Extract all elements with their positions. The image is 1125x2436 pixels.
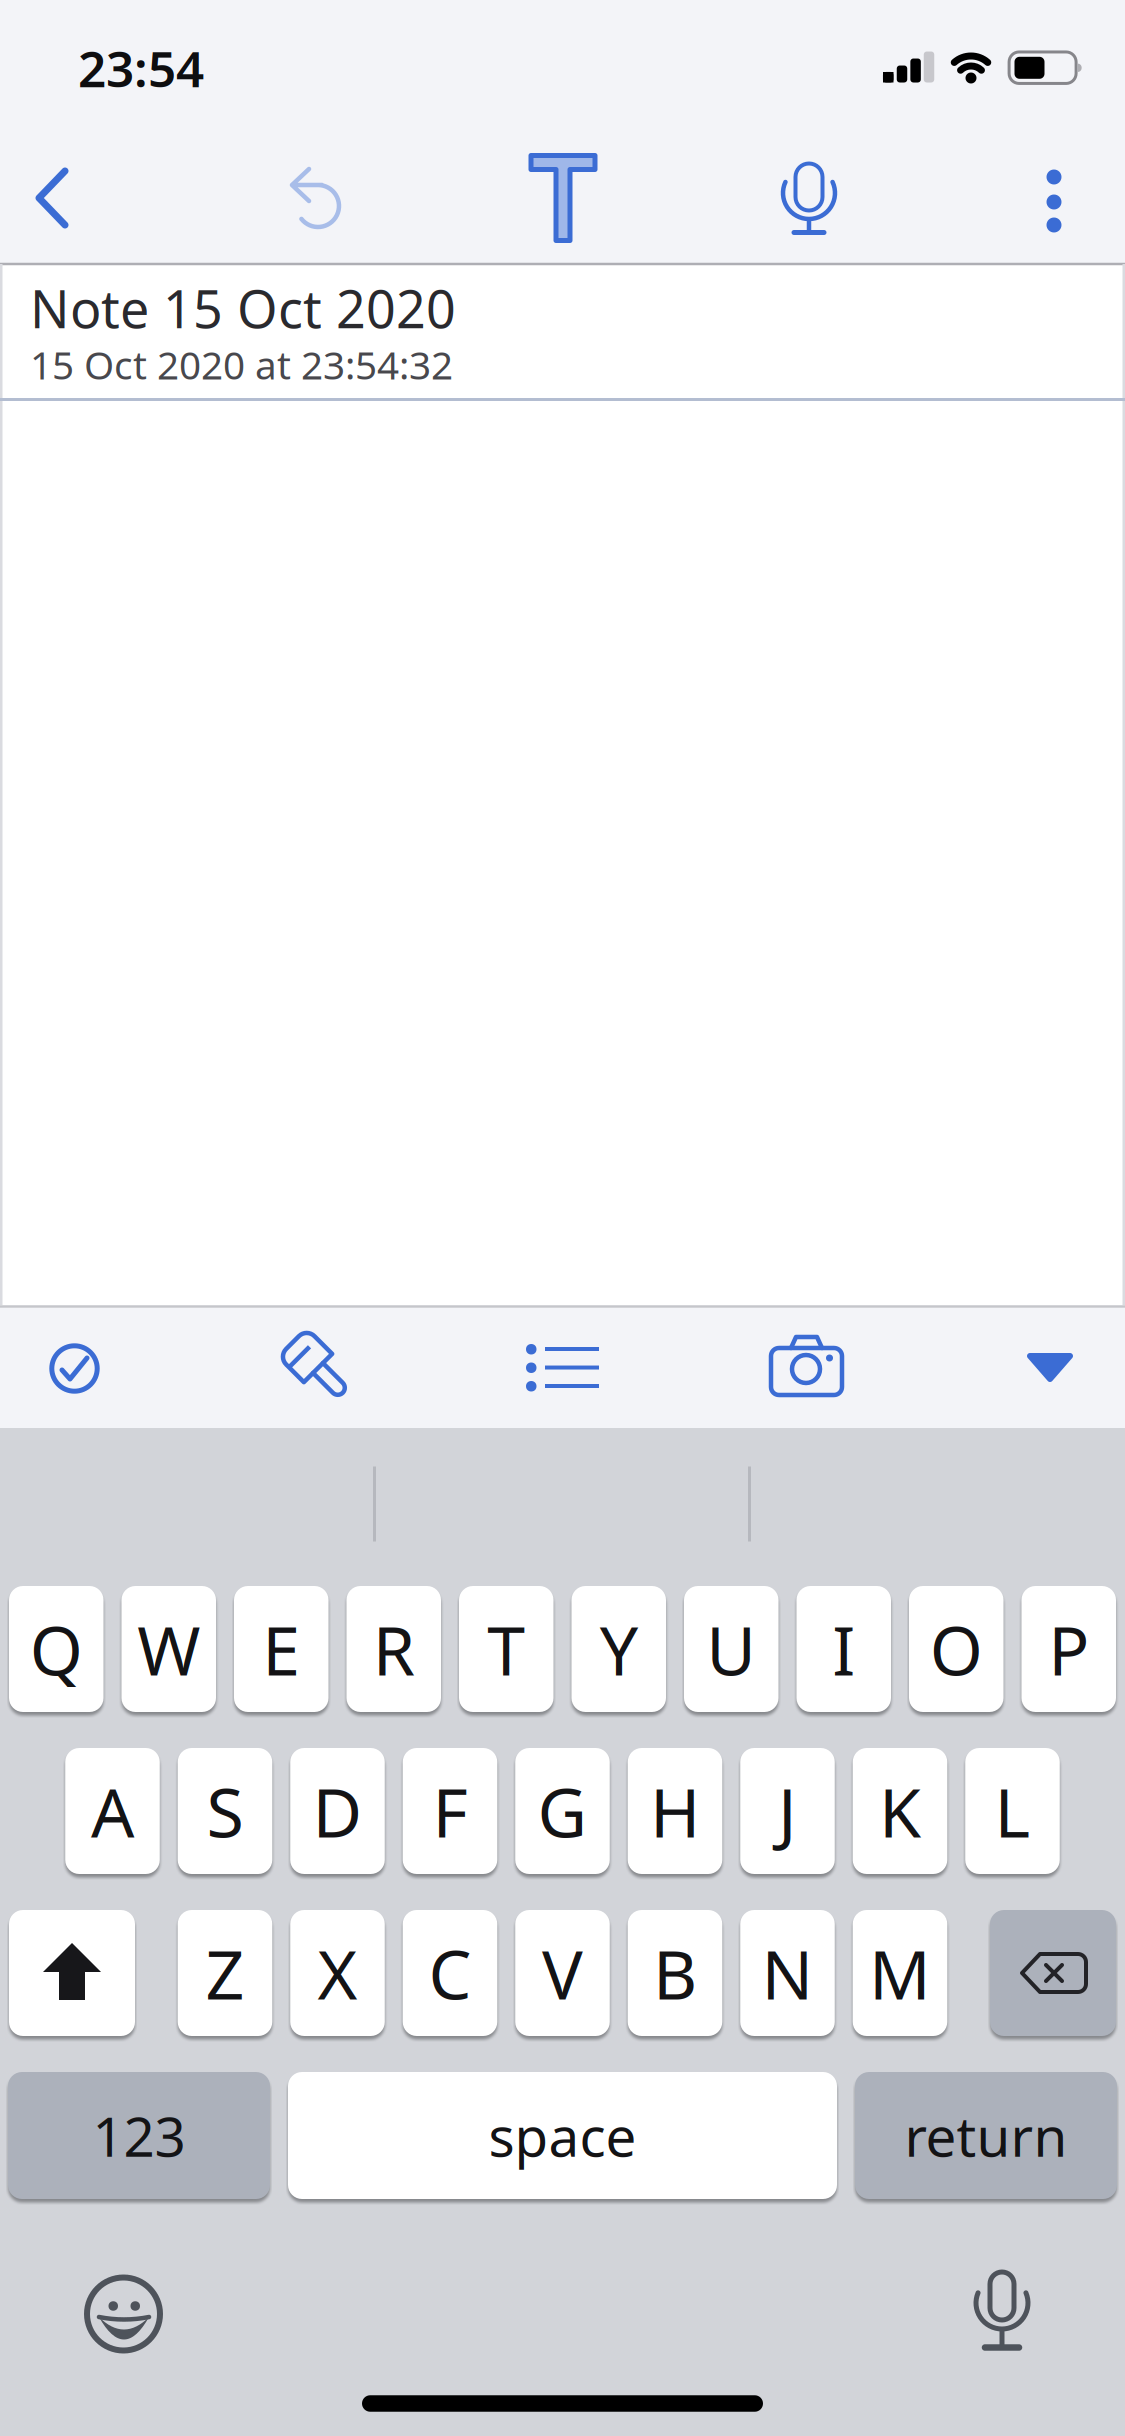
staticText: T [487, 1604, 525, 1694]
button[interactable]: E [234, 1586, 328, 1712]
button[interactable]: Checklist [14, 1308, 134, 1428]
button[interactable]: Q [9, 1586, 103, 1712]
button[interactable]: D [290, 1748, 385, 1874]
staticText: O [930, 1604, 983, 1694]
button[interactable]: Y [571, 1586, 666, 1712]
button[interactable]: 123 [8, 2072, 270, 2199]
button[interactable]: Dismiss keyboard [990, 1308, 1110, 1428]
staticText: return [904, 2099, 1067, 2172]
button[interactable]: J [740, 1748, 835, 1874]
button[interactable]: Delete [990, 1910, 1116, 2036]
staticText: M [869, 1928, 931, 2018]
button[interactable]: N [740, 1910, 835, 2036]
button[interactable]: Camera [748, 1308, 868, 1428]
button[interactable]: C [403, 1910, 497, 2036]
staticText: H [650, 1766, 700, 1856]
button[interactable]: H [628, 1748, 722, 1874]
button[interactable]: G [515, 1748, 610, 1874]
button[interactable]: return [855, 2072, 1117, 2199]
button[interactable]: O [909, 1586, 1003, 1712]
button[interactable]: Dictation [937, 2245, 1067, 2375]
staticText: Z [205, 1928, 244, 2018]
staticText: space [488, 2099, 636, 2172]
button[interactable]: X [290, 1910, 385, 2036]
button[interactable]: Undo [258, 138, 378, 258]
button[interactable]: B [628, 1910, 722, 2036]
staticText: I [832, 1604, 855, 1694]
button[interactable]: V [515, 1910, 610, 2036]
staticText: P [1048, 1604, 1089, 1694]
staticText: D [312, 1766, 362, 1856]
button[interactable]: Format [258, 1308, 378, 1428]
button[interactable]: Z [178, 1910, 272, 2036]
staticText: Q [30, 1604, 83, 1694]
button[interactable]: P [1021, 1586, 1116, 1712]
staticText: R [373, 1604, 415, 1694]
staticText: B [653, 1928, 697, 2018]
staticText: L [994, 1766, 1030, 1856]
staticText: Note 15 Oct 2020 [30, 273, 456, 343]
button[interactable]: U [684, 1586, 778, 1712]
staticText: K [879, 1766, 921, 1856]
button[interactable]: Shift [9, 1910, 135, 2036]
button[interactable]: Bulleted list [503, 1308, 623, 1428]
button[interactable]: F [403, 1748, 497, 1874]
staticText: 123 [92, 2099, 185, 2172]
button[interactable]: Emoji [62, 2252, 182, 2372]
button[interactable]: L [965, 1748, 1060, 1874]
staticText: G [537, 1766, 587, 1856]
button[interactable]: R [346, 1586, 441, 1712]
staticText: J [778, 1766, 797, 1856]
staticText: X [317, 1928, 357, 2018]
button[interactable]: Text format [503, 138, 623, 258]
button[interactable]: Back [0, 138, 114, 258]
button[interactable]: M [853, 1910, 947, 2036]
button[interactable]: T [459, 1586, 553, 1712]
staticText: V [542, 1928, 583, 2018]
staticText: W [137, 1604, 200, 1694]
button[interactable]: A [65, 1748, 160, 1874]
button[interactable]: Dictate [750, 138, 870, 258]
staticText: U [706, 1604, 756, 1694]
staticText: S [206, 1766, 243, 1856]
button[interactable]: K [853, 1748, 947, 1874]
staticText: Y [600, 1604, 638, 1694]
staticText: F [432, 1766, 467, 1856]
staticText: 23:54 [78, 35, 204, 101]
button[interactable]: S [178, 1748, 272, 1874]
staticText: N [761, 1928, 813, 2018]
staticText: A [91, 1766, 134, 1856]
staticText: E [262, 1604, 300, 1694]
button[interactable]: W [121, 1586, 216, 1712]
staticText: 15 Oct 2020 at 23:54:32 [30, 339, 453, 390]
staticText: C [428, 1928, 471, 2018]
button[interactable]: I [796, 1586, 891, 1712]
button[interactable]: space [288, 2072, 837, 2199]
button[interactable]: More [994, 141, 1114, 261]
